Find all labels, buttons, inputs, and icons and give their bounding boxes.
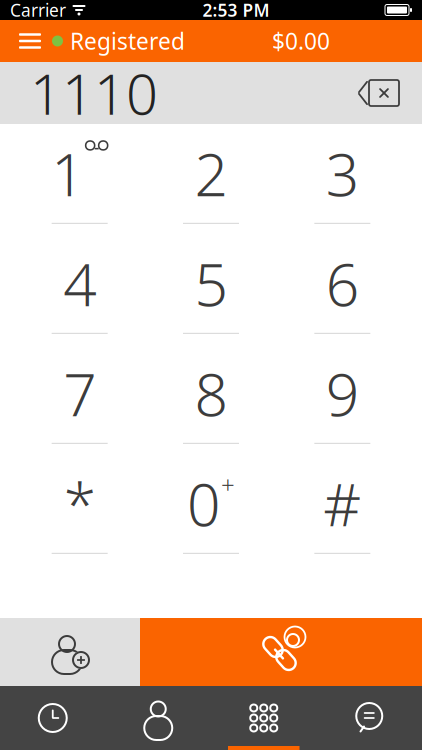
staticText: *	[64, 464, 96, 542]
button[interactable]: Delete	[350, 67, 406, 119]
button[interactable]: Messages	[316, 686, 422, 750]
staticText: 5	[194, 244, 227, 322]
staticText: 0	[187, 464, 220, 542]
button[interactable]: Recents	[0, 686, 105, 750]
button[interactable]: Contacts	[105, 686, 211, 750]
button[interactable]: Add Contact	[0, 618, 140, 686]
staticText: 1	[51, 134, 84, 212]
staticText: 1110	[30, 56, 158, 130]
button[interactable]: 6	[277, 234, 408, 344]
button[interactable]: 4	[14, 234, 145, 344]
button[interactable]: 8	[145, 344, 277, 454]
button[interactable]: 2	[145, 124, 277, 234]
button[interactable]: Registered	[52, 16, 185, 66]
staticText: Carrier	[10, 0, 66, 21]
staticText: #	[323, 464, 361, 542]
button[interactable]: 5	[145, 234, 277, 344]
staticText: 3	[326, 134, 359, 212]
button[interactable]: #	[277, 454, 408, 564]
staticText: 2	[194, 134, 227, 212]
button[interactable]: 7	[14, 344, 145, 454]
staticText: 9	[326, 354, 359, 432]
staticText: Registered	[70, 26, 185, 56]
button[interactable]: Keypad	[211, 686, 316, 750]
button[interactable]: 0	[145, 454, 277, 564]
staticText: 8	[194, 354, 227, 432]
staticText: +	[221, 468, 235, 500]
staticText: $0.00	[272, 26, 330, 56]
staticText: 2:53 PM	[202, 0, 269, 21]
button[interactable]: Menu	[8, 20, 52, 62]
button[interactable]: 1	[14, 124, 145, 234]
staticText: 4	[63, 244, 96, 322]
button[interactable]: 3	[277, 124, 408, 234]
button[interactable]: Call	[140, 618, 422, 686]
button[interactable]: *	[14, 454, 145, 564]
staticText: 7	[63, 354, 96, 432]
staticText: 6	[326, 244, 359, 322]
button[interactable]: 9	[277, 344, 408, 454]
